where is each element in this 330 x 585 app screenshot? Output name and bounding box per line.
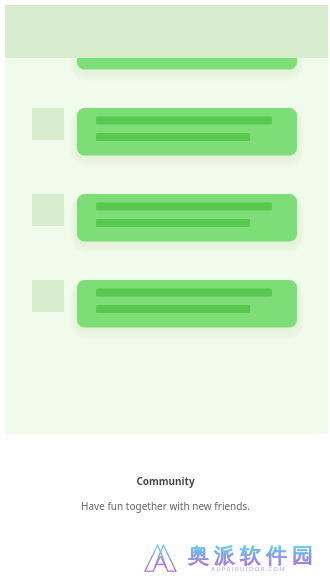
staticText: AUPAIRUIDOR.COM: [211, 565, 286, 573]
staticText: 奥派软件园: [185, 543, 315, 569]
staticText: Community: [136, 474, 195, 488]
staticText: Have fun together with new friends.: [81, 499, 250, 513]
